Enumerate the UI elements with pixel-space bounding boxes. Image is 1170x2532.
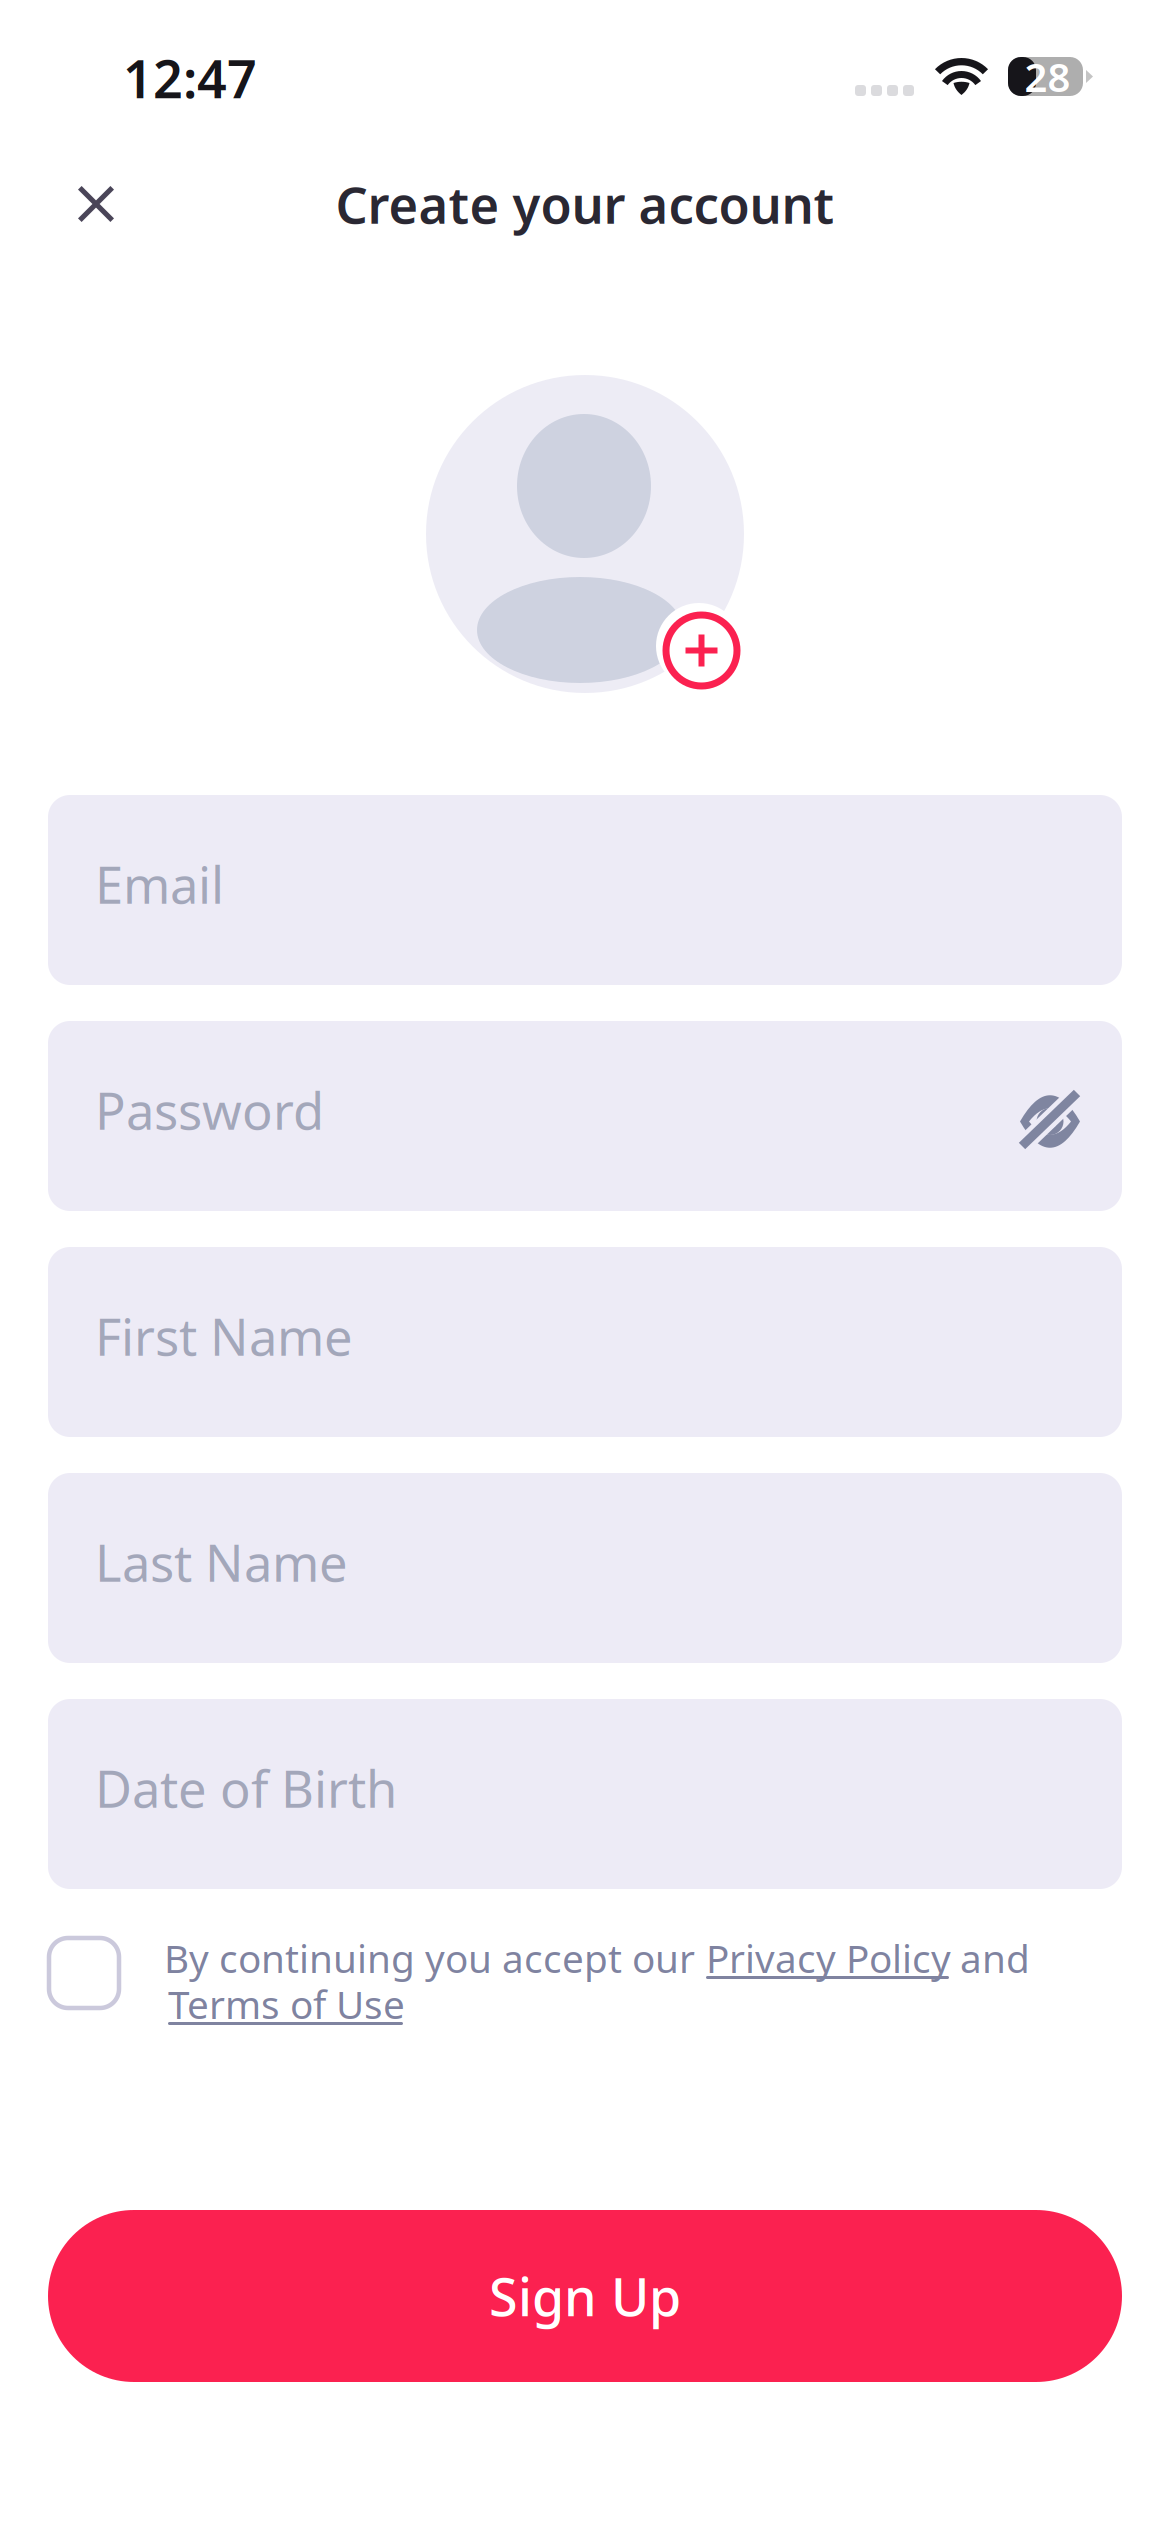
staticText: and — [960, 1932, 1030, 1984]
staticText: Password — [95, 1076, 324, 1144]
button[interactable]: Email — [48, 795, 1122, 985]
staticText: Privacy Policy — [706, 1932, 951, 1984]
button[interactable]: First Name — [48, 1247, 1122, 1437]
button[interactable]: Terms of Use — [168, 1982, 428, 2030]
button[interactable]: Last Name — [48, 1473, 1122, 1663]
button[interactable]: Show password — [992, 1067, 1108, 1176]
staticText: First Name — [95, 1302, 353, 1370]
staticText: By continuing you accept our — [164, 1932, 695, 1984]
staticText: Create your account — [335, 170, 834, 238]
staticText: 28 — [1024, 50, 1070, 103]
staticText: Terms of Use — [168, 1978, 405, 2030]
button[interactable]: Password — [48, 1021, 1122, 1211]
button[interactable]: Date of Birth — [48, 1699, 1122, 1889]
button[interactable]: Close — [44, 152, 148, 256]
staticText: Last Name — [95, 1528, 348, 1596]
button[interactable]: Privacy Policy — [706, 1936, 966, 1984]
staticText: Date of Birth — [95, 1754, 397, 1822]
button[interactable]: Sign Up — [48, 2210, 1122, 2382]
staticText: Sign Up — [489, 2261, 681, 2331]
button[interactable]: Add profile photo — [656, 603, 742, 689]
staticText: Email — [95, 850, 224, 918]
staticText: 12:47 — [123, 43, 257, 113]
button[interactable]: Accept terms and conditions — [49, 1938, 119, 2008]
